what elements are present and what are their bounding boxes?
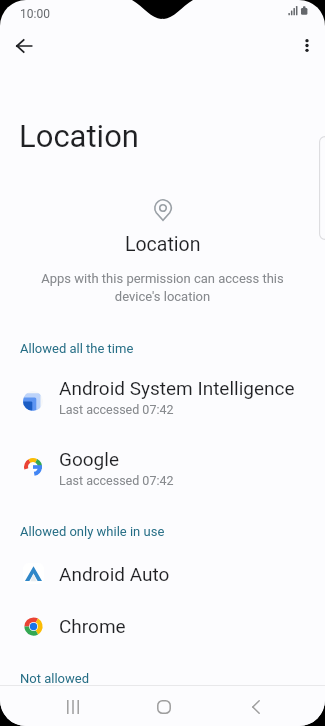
staticText: Location <box>125 233 201 256</box>
button[interactable]: Back <box>233 693 278 721</box>
staticText: Location <box>19 118 139 154</box>
staticText: Allowed only while in use <box>20 524 165 539</box>
staticText: Chrome <box>59 615 126 637</box>
staticText: 10:00 <box>20 7 50 21</box>
button[interactable]: Recents <box>50 693 95 721</box>
staticText: Apps with this permission can access thi… <box>30 271 295 304</box>
button[interactable]: Android Auto <box>0 549 325 591</box>
staticText: Google <box>59 448 119 470</box>
button[interactable]: Google <box>0 434 325 487</box>
staticText: Last accessed 07:42 <box>59 402 174 417</box>
button[interactable]: More options <box>290 29 323 62</box>
staticText: Android Auto <box>59 563 170 585</box>
staticText: Not allowed <box>20 671 89 686</box>
button[interactable]: Chrome <box>0 601 325 643</box>
button[interactable]: Navigate up <box>7 29 40 62</box>
button[interactable]: Home <box>141 693 186 721</box>
button[interactable]: Android System Intelligence <box>0 363 325 416</box>
staticText: Last accessed 07:42 <box>59 473 174 488</box>
staticText: Android System Intelligence <box>59 377 295 399</box>
staticText: Allowed all the time <box>20 341 134 356</box>
